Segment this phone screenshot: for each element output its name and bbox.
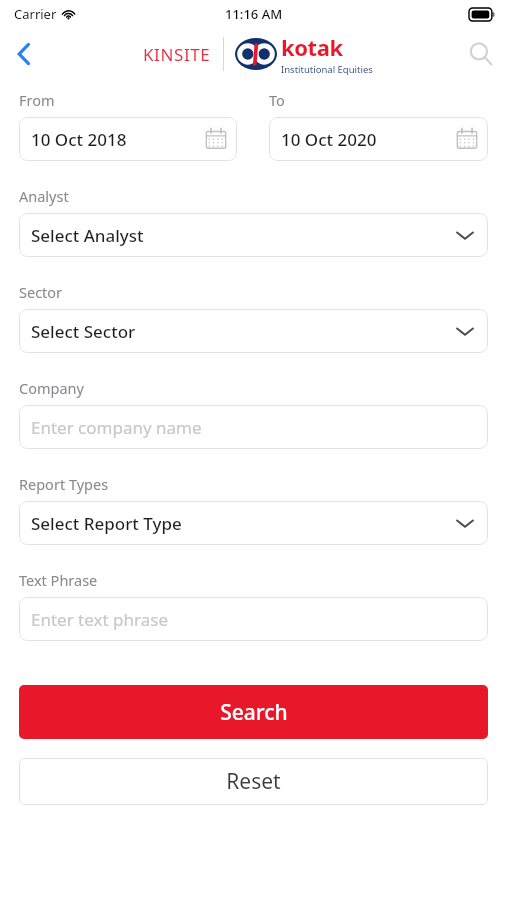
button[interactable]: 10 Oct 2020 xyxy=(269,117,488,161)
button[interactable]: Search xyxy=(19,685,488,739)
staticText: 11:16 AM xyxy=(225,5,283,23)
staticText: Search xyxy=(220,698,288,727)
button[interactable]: 10 Oct 2018 xyxy=(19,117,237,161)
staticText: Report Types xyxy=(19,474,109,494)
staticText: To xyxy=(269,90,285,110)
staticText: Enter company name xyxy=(31,416,202,439)
staticText: Select Sector xyxy=(31,320,136,343)
staticText: Enter text phrase xyxy=(31,608,168,631)
button[interactable]: Search xyxy=(455,28,507,80)
staticText: Select Analyst xyxy=(31,224,144,247)
staticText: From xyxy=(19,90,55,110)
button[interactable]: Enter company name xyxy=(19,405,488,449)
staticText: Sector xyxy=(19,282,63,302)
staticText: 10 Oct 2018 xyxy=(31,128,127,151)
staticText: Institutional Equities xyxy=(281,63,373,76)
staticText: Company xyxy=(19,378,84,398)
button[interactable]: Enter text phrase xyxy=(19,597,488,641)
staticText: Reset xyxy=(226,767,281,796)
button[interactable]: Select Sector xyxy=(19,309,488,353)
staticText: Text Phrase xyxy=(19,570,98,590)
staticText: kotak xyxy=(281,32,343,62)
button[interactable]: Select Report Type xyxy=(19,501,488,545)
button[interactable]: Reset xyxy=(19,758,488,805)
staticText: Carrier xyxy=(14,5,57,23)
button[interactable]: Back xyxy=(0,28,48,80)
staticText: KINSITE xyxy=(143,43,211,66)
staticText: Select Report Type xyxy=(31,512,182,535)
staticText: 10 Oct 2020 xyxy=(281,128,377,151)
button[interactable]: Select Analyst xyxy=(19,213,488,257)
staticText: Analyst xyxy=(19,186,69,206)
